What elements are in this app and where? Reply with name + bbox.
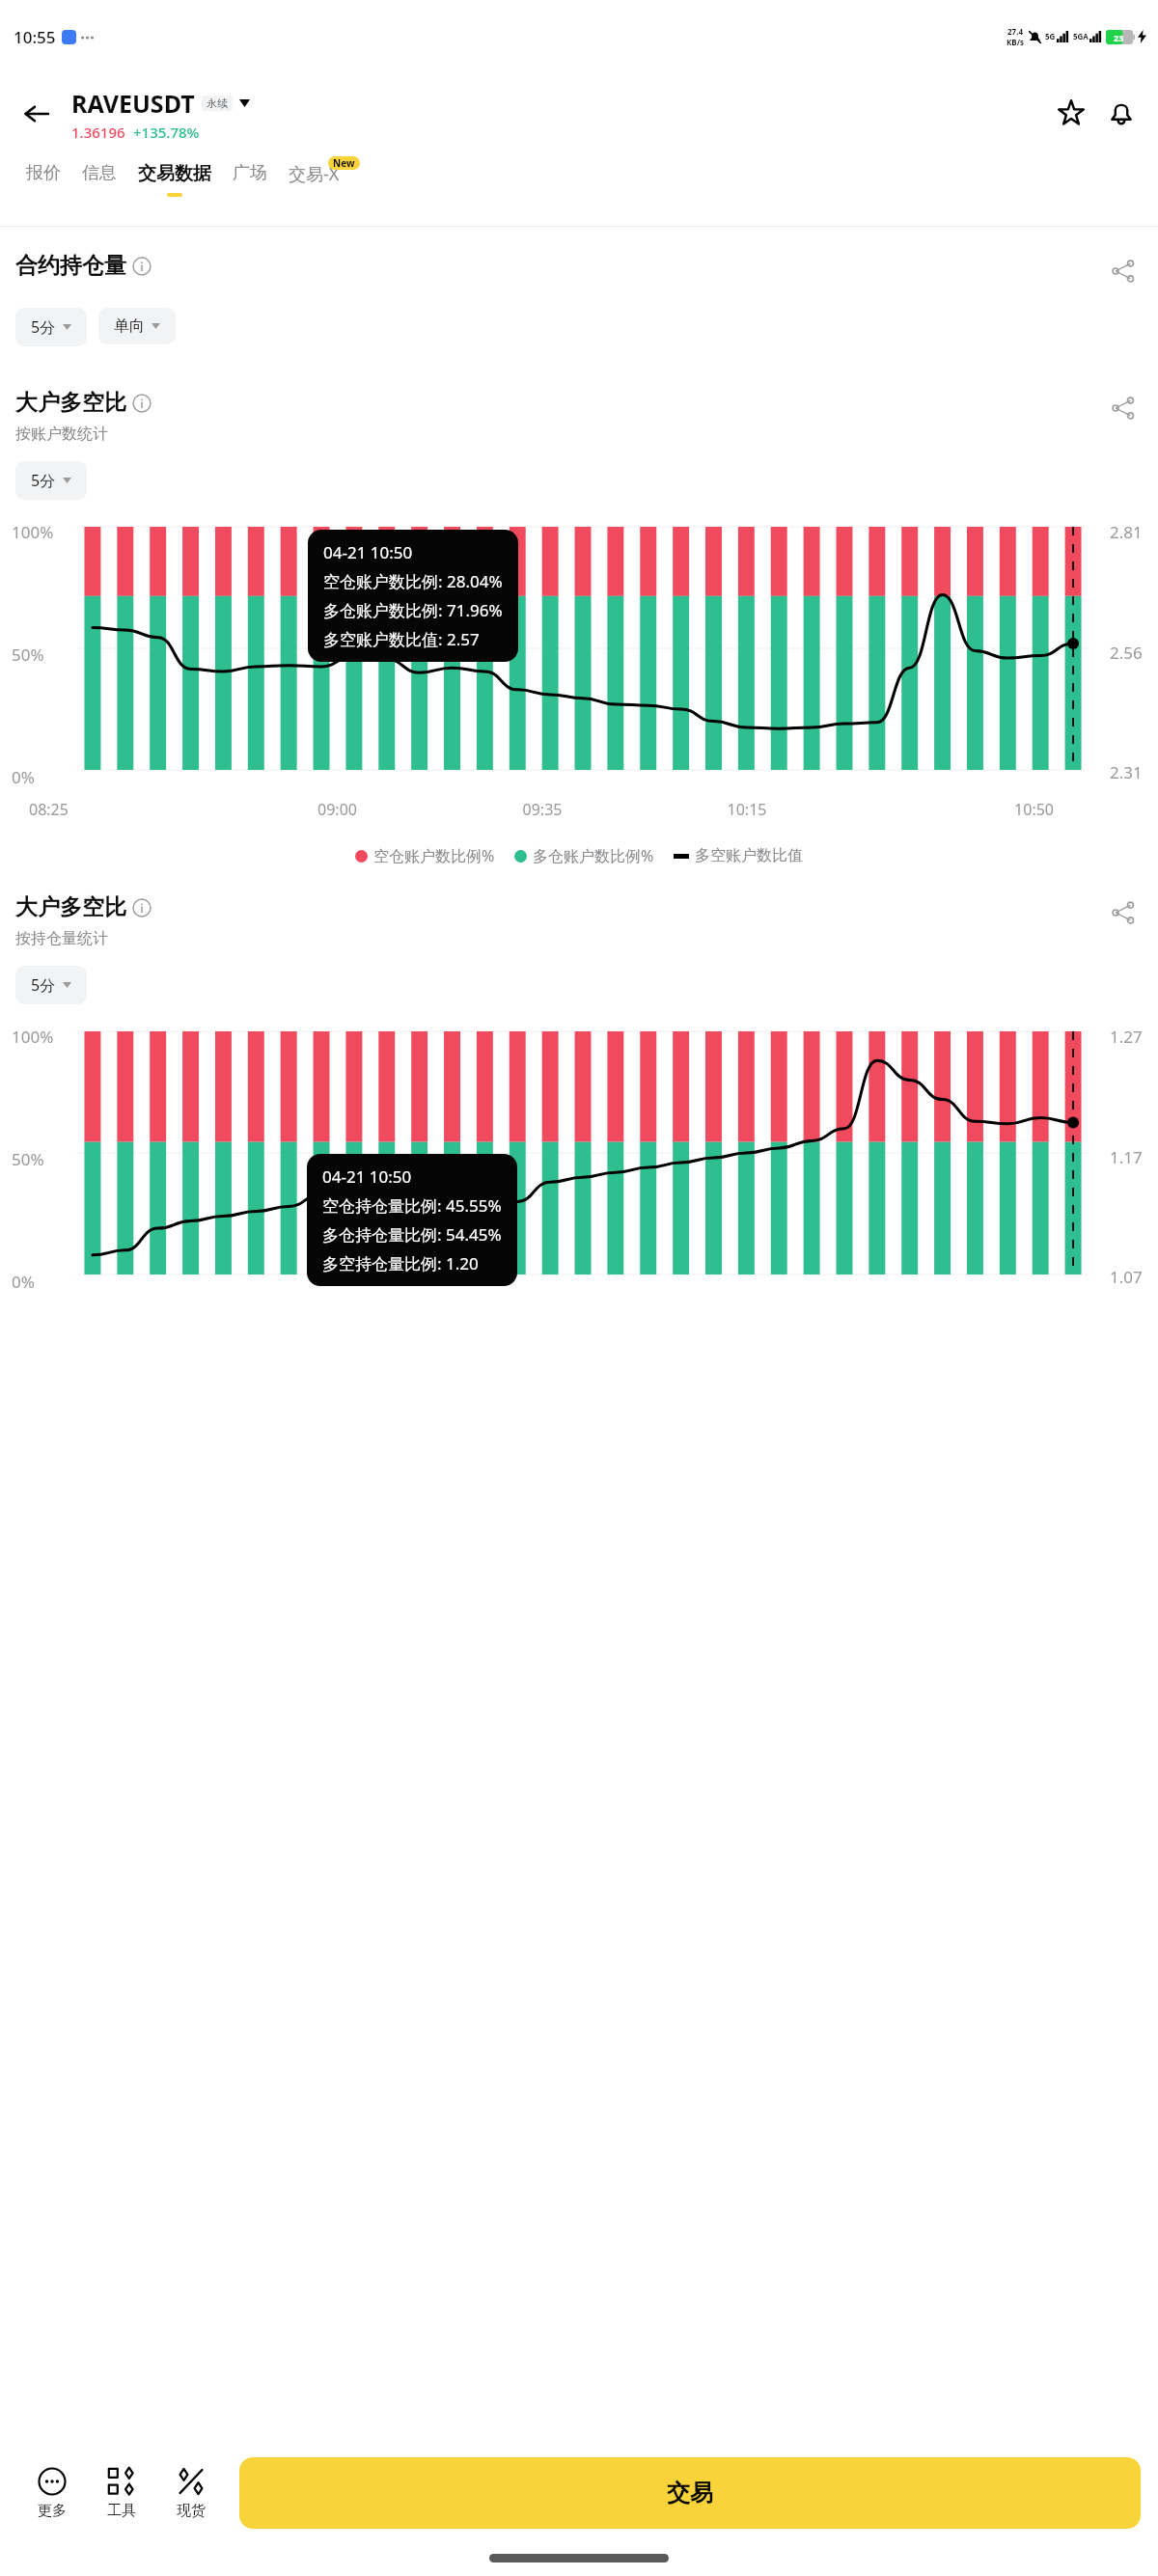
staticText: 更多 (38, 2502, 67, 2520)
button[interactable]: 更多 (17, 2465, 87, 2522)
staticText: 广场 (233, 162, 267, 184)
staticText: 2.31 (1110, 761, 1143, 783)
staticText: 100% (12, 1026, 54, 1043)
button[interactable]: Share (1104, 389, 1143, 427)
staticText: 27.4 (1007, 26, 1023, 37)
staticText: KB/s (1006, 37, 1024, 47)
staticText: 100% (12, 521, 54, 538)
staticText: 50% (12, 1148, 44, 1165)
staticText: 信息 (82, 162, 117, 184)
button[interactable]: 报价 (15, 160, 71, 194)
staticText: 合约持仓量 (15, 252, 126, 280)
staticText: 04-21 10:50 (323, 541, 413, 563)
staticText: 5分 (31, 974, 56, 996)
staticText: 交易-X (289, 162, 340, 186)
button[interactable]: 广场 (222, 160, 278, 194)
staticText: +135.78% (133, 123, 200, 142)
button[interactable]: 5分 (15, 461, 87, 500)
staticText: 2.56 (1110, 642, 1143, 664)
staticText: 50% (12, 644, 44, 661)
button[interactable]: Notifications (1096, 89, 1146, 139)
staticText: 大户多空比 (15, 389, 126, 417)
staticText: 5分 (31, 316, 56, 338)
button[interactable]: Share (1104, 893, 1143, 932)
staticText: 多仓账户数比例: 71.96% (323, 599, 503, 621)
button[interactable]: 交易 (239, 2457, 1141, 2529)
button[interactable]: 交易-X (278, 160, 350, 196)
staticText: 永续 (207, 96, 228, 110)
staticText: 04-21 10:50 (322, 1165, 412, 1188)
staticText: 23 (1114, 32, 1124, 43)
staticText: 0% (12, 766, 35, 783)
staticText: 1.36196 (71, 123, 125, 142)
button[interactable]: 现货 (156, 2465, 226, 2522)
staticText: 按持仓量统计 (15, 929, 108, 948)
staticText: 5G (1045, 31, 1056, 41)
button[interactable]: Info (132, 394, 152, 413)
button[interactable]: 工具 (87, 2465, 156, 2522)
staticText: RAVEUSDT (71, 87, 195, 120)
button[interactable]: 5分 (15, 966, 87, 1004)
staticText: New (333, 156, 355, 170)
staticText: 10:15 (645, 799, 849, 820)
staticText: 多仓账户数比例% (533, 845, 654, 866)
staticText: 单向 (114, 316, 145, 336)
staticText: 10:55 (14, 26, 56, 48)
staticText: 多空账户数比值: 2.57 (323, 628, 480, 650)
staticText: 空仓账户数比例% (373, 845, 495, 866)
staticText: 工具 (107, 2502, 136, 2520)
staticText: 多空持仓量比例: 1.20 (322, 1252, 479, 1274)
staticText: 1.07 (1110, 1266, 1143, 1288)
staticText: 5分 (31, 470, 56, 491)
staticText: 报价 (26, 162, 61, 184)
staticText: 交易 (667, 2479, 713, 2507)
staticText: 1.17 (1110, 1146, 1143, 1168)
button[interactable]: Back (10, 87, 64, 141)
staticText: 2.81 (1110, 521, 1143, 543)
staticText: 1.27 (1110, 1026, 1143, 1048)
staticText: 大户多空比 (15, 893, 126, 921)
staticText: 多空账户数比值 (695, 846, 803, 865)
staticText: 交易数据 (138, 162, 211, 185)
button[interactable]: Info (132, 257, 152, 276)
button[interactable]: Share (1104, 252, 1143, 290)
button[interactable]: 交易数据 (127, 160, 222, 199)
staticText: 09:00 (234, 799, 440, 820)
staticText: 0% (12, 1271, 35, 1288)
staticText: 现货 (177, 2502, 206, 2520)
button[interactable]: 单向 (98, 308, 176, 344)
staticText: 5GA (1073, 31, 1089, 41)
staticText: 空仓持仓量比例: 45.55% (322, 1194, 502, 1217)
staticText: 空仓账户数比例: 28.04% (323, 570, 503, 592)
staticText: 08:25 (29, 799, 234, 820)
button[interactable]: Info (132, 898, 152, 918)
button[interactable]: Favorite (1046, 89, 1096, 139)
staticText: 09:35 (440, 799, 645, 820)
staticText: 10:50 (849, 799, 1054, 820)
button[interactable]: 5分 (15, 308, 87, 346)
button[interactable]: 信息 (71, 160, 127, 194)
staticText: 多仓持仓量比例: 54.45% (322, 1223, 502, 1246)
staticText: 按账户数统计 (15, 425, 108, 444)
